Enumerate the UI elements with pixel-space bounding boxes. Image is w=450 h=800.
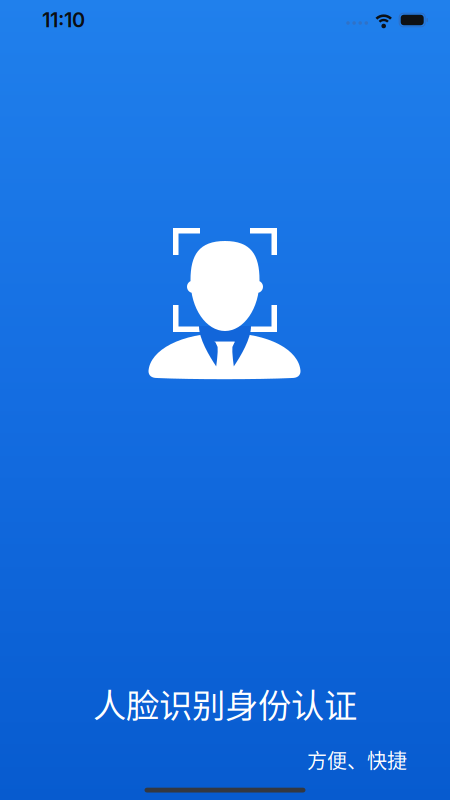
staticText: 11:10 — [42, 8, 85, 32]
staticText: 方便、快捷 — [307, 745, 407, 774]
staticText: 人脸识别身份认证 — [93, 679, 357, 727]
